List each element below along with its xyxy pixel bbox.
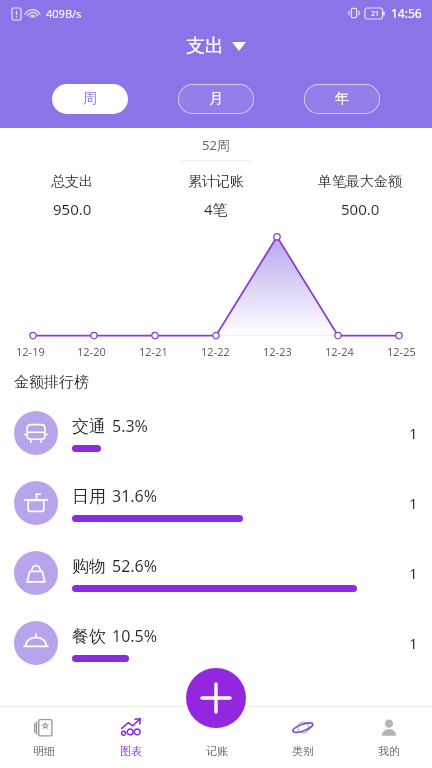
staticText: 购物 (72, 556, 106, 577)
staticText: 52.6% (112, 555, 158, 577)
staticText: 12-21 (139, 344, 168, 359)
button[interactable]: 记账 (174, 706, 260, 768)
button[interactable]: 我的 (346, 706, 432, 768)
staticText: 1 (409, 493, 418, 513)
button[interactable]: 周 (52, 84, 128, 114)
button[interactable]: 支出 (178, 30, 254, 62)
staticText: 类别 (292, 744, 314, 758)
staticText: 年 (335, 90, 349, 108)
staticText: 12-19 (16, 344, 45, 359)
button[interactable]: 类别 (260, 706, 346, 768)
staticText: 12-24 (325, 344, 354, 359)
staticText: 周 (83, 90, 97, 108)
staticText: 支出 (186, 34, 224, 58)
staticText: 12-23 (263, 344, 292, 359)
staticText: 单笔最大金额 (318, 173, 402, 191)
staticText: 1 (409, 633, 418, 653)
staticText: 52周 (202, 136, 230, 154)
button[interactable]: 年 (304, 84, 380, 114)
staticText: 1 (409, 563, 418, 583)
staticText: 14:56 (391, 5, 422, 21)
button[interactable]: 月 (178, 84, 254, 114)
button[interactable]: 日用 (0, 468, 432, 538)
staticText: 4笔 (204, 199, 228, 219)
staticText: 409B/s (46, 6, 82, 21)
staticText: 交通 (72, 416, 106, 437)
button[interactable]: 记账 (186, 668, 246, 728)
button[interactable]: 图表 (87, 706, 174, 768)
staticText: 950.0 (53, 199, 92, 219)
staticText: 记账 (206, 744, 228, 758)
staticText: 21 (371, 9, 380, 19)
staticText: 日用 (72, 486, 106, 507)
button[interactable]: 交通 (0, 398, 432, 468)
staticText: 图表 (120, 744, 142, 758)
staticText: 12-22 (201, 344, 230, 359)
staticText: 总支出 (51, 173, 93, 191)
button[interactable]: 购物 (0, 538, 432, 608)
staticText: 10.5% (112, 625, 158, 647)
button[interactable]: 餐饮 (0, 608, 432, 678)
staticText: 累计记账 (188, 173, 244, 191)
staticText: 金额排行榜 (14, 373, 89, 392)
staticText: 我的 (378, 744, 400, 758)
staticText: 1 (409, 423, 418, 443)
staticText: 12-25 (387, 344, 416, 359)
button[interactable]: 明细 (0, 706, 87, 768)
staticText: 明细 (33, 744, 55, 758)
staticText: 月 (209, 90, 223, 108)
staticText: 餐饮 (72, 626, 106, 647)
staticText: 12-20 (77, 344, 106, 359)
staticText: 500.0 (341, 199, 380, 219)
staticText: 31.6% (112, 485, 158, 507)
staticText: 5.3% (112, 415, 148, 437)
